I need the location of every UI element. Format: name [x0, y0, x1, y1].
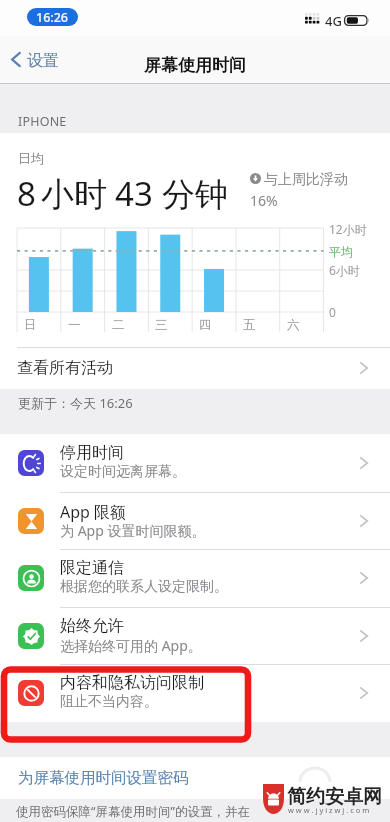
staticText: 与上周比浮动 [264, 171, 348, 189]
staticText: 六 [287, 317, 300, 333]
staticText: 4G [325, 12, 342, 30]
staticText: 选择始终可用的 App。 [60, 636, 202, 655]
button[interactable]: 为屏幕使用时间设置密码 [0, 757, 390, 799]
staticText: 平均 [329, 244, 353, 259]
button[interactable]: 设置 [11, 36, 59, 83]
staticText: 停用时间 [60, 443, 124, 463]
staticText: 根据您的联系人设定限制。 [60, 578, 228, 596]
button[interactable]: 停用时间 [0, 434, 390, 492]
staticText: 12小时 [329, 221, 367, 237]
staticText: 更新于：今天 16:26 [18, 394, 133, 412]
button[interactable]: App 限额 [0, 492, 390, 550]
staticText: 分钟 [162, 174, 228, 216]
staticText: 为 App 设置时间限额。 [60, 521, 206, 540]
staticText: 0 [329, 304, 336, 320]
staticText: 阻止不当内容。 [60, 693, 158, 711]
button[interactable]: 始终允许 [0, 607, 390, 665]
staticText: 16% [250, 191, 278, 210]
button[interactable]: 限定通信 [0, 549, 390, 607]
button[interactable]: 内容和隐私访问限制 [0, 664, 390, 722]
staticText: 始终允许 [60, 616, 124, 636]
staticText: 为屏幕使用时间设置密码 [18, 768, 189, 788]
staticText: 查看所有活动 [17, 358, 113, 378]
staticText: 小时 [41, 174, 107, 216]
staticText: 设置 [27, 51, 59, 71]
staticText: 43 [115, 171, 153, 216]
staticText: 五 [243, 317, 256, 333]
staticText: 日 [24, 317, 37, 333]
button[interactable]: 查看所有活动 [0, 347, 390, 389]
staticText: w w w . j y i z w j . c o m [288, 805, 370, 815]
staticText: 6小时 [329, 262, 360, 278]
staticText: IPHONE [18, 113, 67, 130]
staticText: 二 [112, 317, 125, 333]
staticText: 限定通信 [60, 558, 124, 578]
staticText: 四 [199, 317, 212, 333]
staticText: 一 [68, 317, 81, 333]
staticText: App 限额 [60, 501, 127, 523]
staticText: 16:26 [36, 9, 69, 26]
staticText: 内容和隐私访问限制 [60, 673, 204, 693]
staticText: 8 [17, 171, 36, 216]
staticText: 屏幕使用时间 [144, 55, 246, 76]
staticText: 三 [155, 317, 168, 333]
staticText: 使用密码保障“屏幕使用时间”的设置，并在 [16, 803, 250, 820]
staticText: 日均 [18, 150, 44, 166]
staticText: 设定时间远离屏幕。 [60, 463, 186, 481]
staticText: 简约安卓网 [287, 785, 382, 809]
